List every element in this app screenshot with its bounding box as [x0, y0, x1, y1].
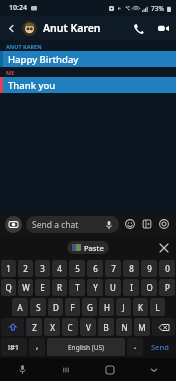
staticText: Happy Birthday	[8, 53, 79, 66]
button[interactable]: Recent apps	[44, 358, 88, 381]
staticText: D	[53, 302, 59, 313]
button[interactable]: O	[141, 279, 157, 296]
button[interactable]: Y	[87, 279, 103, 296]
button[interactable]: C	[62, 318, 78, 336]
staticText: English (US)	[68, 343, 105, 352]
staticText: 10:24	[9, 3, 27, 13]
button[interactable]: Anut Karen	[43, 16, 126, 40]
button[interactable]: Voice call	[126, 16, 150, 40]
staticText: I	[130, 282, 133, 293]
button[interactable]: 5	[69, 260, 85, 277]
staticText: F	[70, 302, 75, 313]
staticText: 3	[40, 263, 45, 274]
staticText: Paste	[84, 243, 104, 253]
button[interactable]: U	[105, 279, 121, 296]
button[interactable]: Back	[0, 16, 22, 40]
button[interactable]: Shift	[1, 318, 24, 336]
staticText: K	[138, 302, 143, 313]
button[interactable]: E	[35, 279, 50, 296]
staticText: Thank you	[8, 79, 56, 92]
button[interactable]: 4	[52, 260, 67, 277]
button[interactable]: Voice input	[0, 358, 44, 381]
button[interactable]: M	[134, 318, 150, 336]
button[interactable]: Emoji	[123, 217, 137, 231]
staticText: S	[36, 302, 41, 313]
staticText: 0	[165, 263, 170, 274]
button[interactable]: L	[150, 298, 165, 316]
staticText: M	[138, 322, 146, 333]
staticText: ,	[36, 340, 39, 351]
button[interactable]: .	[127, 338, 143, 356]
staticText: 73%	[151, 4, 164, 13]
staticText: J	[122, 302, 125, 313]
button[interactable]: H	[99, 298, 114, 316]
staticText: N	[121, 322, 128, 333]
button[interactable]: V	[80, 318, 96, 336]
staticText: Z	[32, 322, 37, 333]
staticText: ME	[6, 69, 15, 76]
staticText: P	[165, 282, 170, 293]
staticText: X	[50, 322, 55, 333]
button[interactable]: P	[159, 279, 175, 296]
button[interactable]: !#1	[1, 338, 27, 356]
staticText: 8	[129, 263, 134, 274]
button[interactable]: J	[116, 298, 131, 316]
staticText: W	[22, 282, 30, 293]
button[interactable]: G	[82, 298, 97, 316]
staticText: L	[155, 302, 160, 313]
staticText: !#1	[8, 342, 20, 352]
button[interactable]: Close	[158, 242, 170, 254]
button[interactable]: T	[69, 279, 85, 296]
button[interactable]: Home	[88, 358, 132, 381]
staticText: C	[67, 322, 73, 333]
button[interactable]: F	[65, 298, 80, 316]
button[interactable]: Snap Map	[157, 217, 171, 231]
staticText: G	[87, 302, 93, 313]
button[interactable]: Z	[26, 318, 42, 336]
button[interactable]: Video call	[150, 16, 176, 40]
button[interactable]: English (US)	[47, 338, 125, 356]
staticText: Q	[5, 282, 12, 293]
button[interactable]: 7	[105, 260, 121, 277]
button[interactable]: Send	[145, 338, 175, 356]
button[interactable]: Q	[1, 279, 16, 296]
button[interactable]: Thank you	[0, 77, 176, 93]
staticText: 7	[111, 263, 116, 274]
button[interactable]: 3	[35, 260, 50, 277]
button[interactable]: Paste	[67, 241, 109, 254]
button[interactable]: 9	[141, 260, 157, 277]
button[interactable]: N	[116, 318, 132, 336]
staticText: B	[103, 322, 109, 333]
button[interactable]: R	[52, 279, 67, 296]
staticText: Send a chat	[32, 219, 105, 231]
staticText: O	[146, 282, 153, 293]
button[interactable]: 6	[87, 260, 103, 277]
button[interactable]: X	[44, 318, 60, 336]
button[interactable]: ,	[29, 338, 45, 356]
staticText: T	[75, 282, 80, 293]
button[interactable]: A	[12, 298, 28, 316]
staticText: Y	[93, 282, 98, 293]
button[interactable]: D	[48, 298, 63, 316]
button[interactable]: K	[133, 298, 148, 316]
button[interactable]: 0	[159, 260, 175, 277]
button[interactable]: I	[123, 279, 139, 296]
staticText: E	[40, 282, 45, 293]
button[interactable]: W	[18, 279, 33, 296]
button[interactable]: 8	[123, 260, 139, 277]
button[interactable]: Stickers	[140, 217, 154, 231]
button[interactable]: 1	[1, 260, 16, 277]
staticText: U	[110, 282, 116, 293]
button[interactable]: 2	[18, 260, 33, 277]
button[interactable]: Camera	[5, 216, 22, 233]
button[interactable]: Backspace	[152, 318, 175, 336]
button[interactable]: Send a chat	[26, 216, 119, 233]
button[interactable]: S	[30, 298, 46, 316]
button[interactable]: B	[98, 318, 114, 336]
staticText: 9	[147, 263, 152, 274]
staticText: R	[57, 282, 62, 293]
staticText: V	[86, 322, 91, 333]
button[interactable]: Happy Birthday	[0, 51, 176, 67]
button[interactable]: Hide keyboard	[132, 358, 176, 381]
staticText: 6	[93, 263, 98, 274]
